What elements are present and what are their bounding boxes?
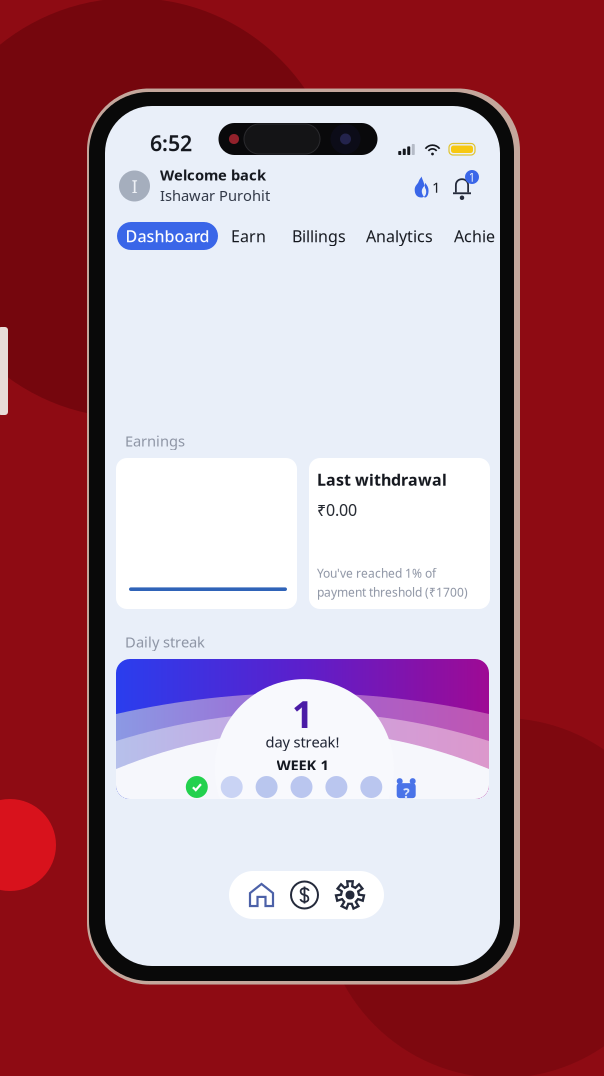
- button[interactable]: Settings: [327, 871, 373, 919]
- staticText: day streak!: [265, 732, 339, 751]
- staticText: Daily streak: [125, 632, 205, 651]
- staticText: Analytics: [366, 225, 433, 247]
- staticText: ₹0.00: [317, 499, 357, 520]
- staticText: Welcome back: [160, 165, 266, 184]
- button[interactable]: Analytics: [356, 219, 443, 253]
- staticText: Billings: [292, 225, 346, 247]
- staticText: ?: [403, 784, 409, 802]
- staticText: 1: [292, 689, 313, 739]
- button[interactable]: Notifications: [453, 170, 481, 198]
- button[interactable]: Streak count: [414, 176, 440, 197]
- staticText: 6:52: [150, 129, 192, 157]
- staticText: 1: [468, 169, 475, 185]
- staticText: Earnings: [125, 431, 185, 450]
- button[interactable]: Earnings: [282, 871, 327, 918]
- staticText: Ishawar Purohit: [160, 185, 270, 205]
- staticText: WEEK 1: [276, 755, 328, 774]
- button[interactable]: Earn: [221, 219, 276, 253]
- staticText: payment threshold (₹1700): [317, 584, 468, 600]
- button[interactable]: Achie: [444, 219, 505, 253]
- button[interactable]: Billings: [282, 219, 356, 253]
- button[interactable]: Profile: [119, 170, 150, 201]
- button[interactable]: Home: [239, 871, 284, 919]
- staticText: You've reached 1% of: [317, 565, 436, 581]
- staticText: 1: [432, 177, 440, 197]
- button[interactable]: Dashboard: [117, 222, 218, 250]
- staticText: Last withdrawal: [317, 469, 447, 490]
- staticText: Dashboard: [125, 225, 209, 247]
- staticText: I: [131, 174, 137, 198]
- staticText: Earn: [231, 225, 266, 247]
- staticText: Achie: [454, 225, 495, 247]
